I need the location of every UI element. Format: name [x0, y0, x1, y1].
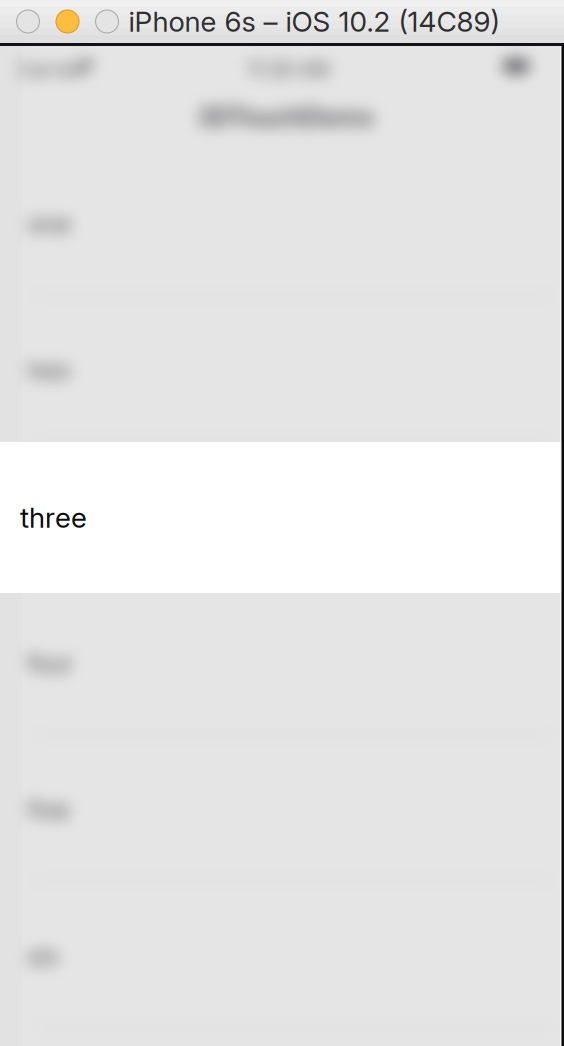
staticText: iPhone 6s – iOS 10.2 (14C89)	[128, 5, 499, 38]
staticText: three	[20, 501, 87, 534]
button[interactable]: three	[0, 442, 564, 593]
button[interactable]: Close	[16, 10, 39, 33]
button[interactable]: Minimize	[56, 10, 79, 33]
button[interactable]: Zoom	[95, 10, 118, 33]
